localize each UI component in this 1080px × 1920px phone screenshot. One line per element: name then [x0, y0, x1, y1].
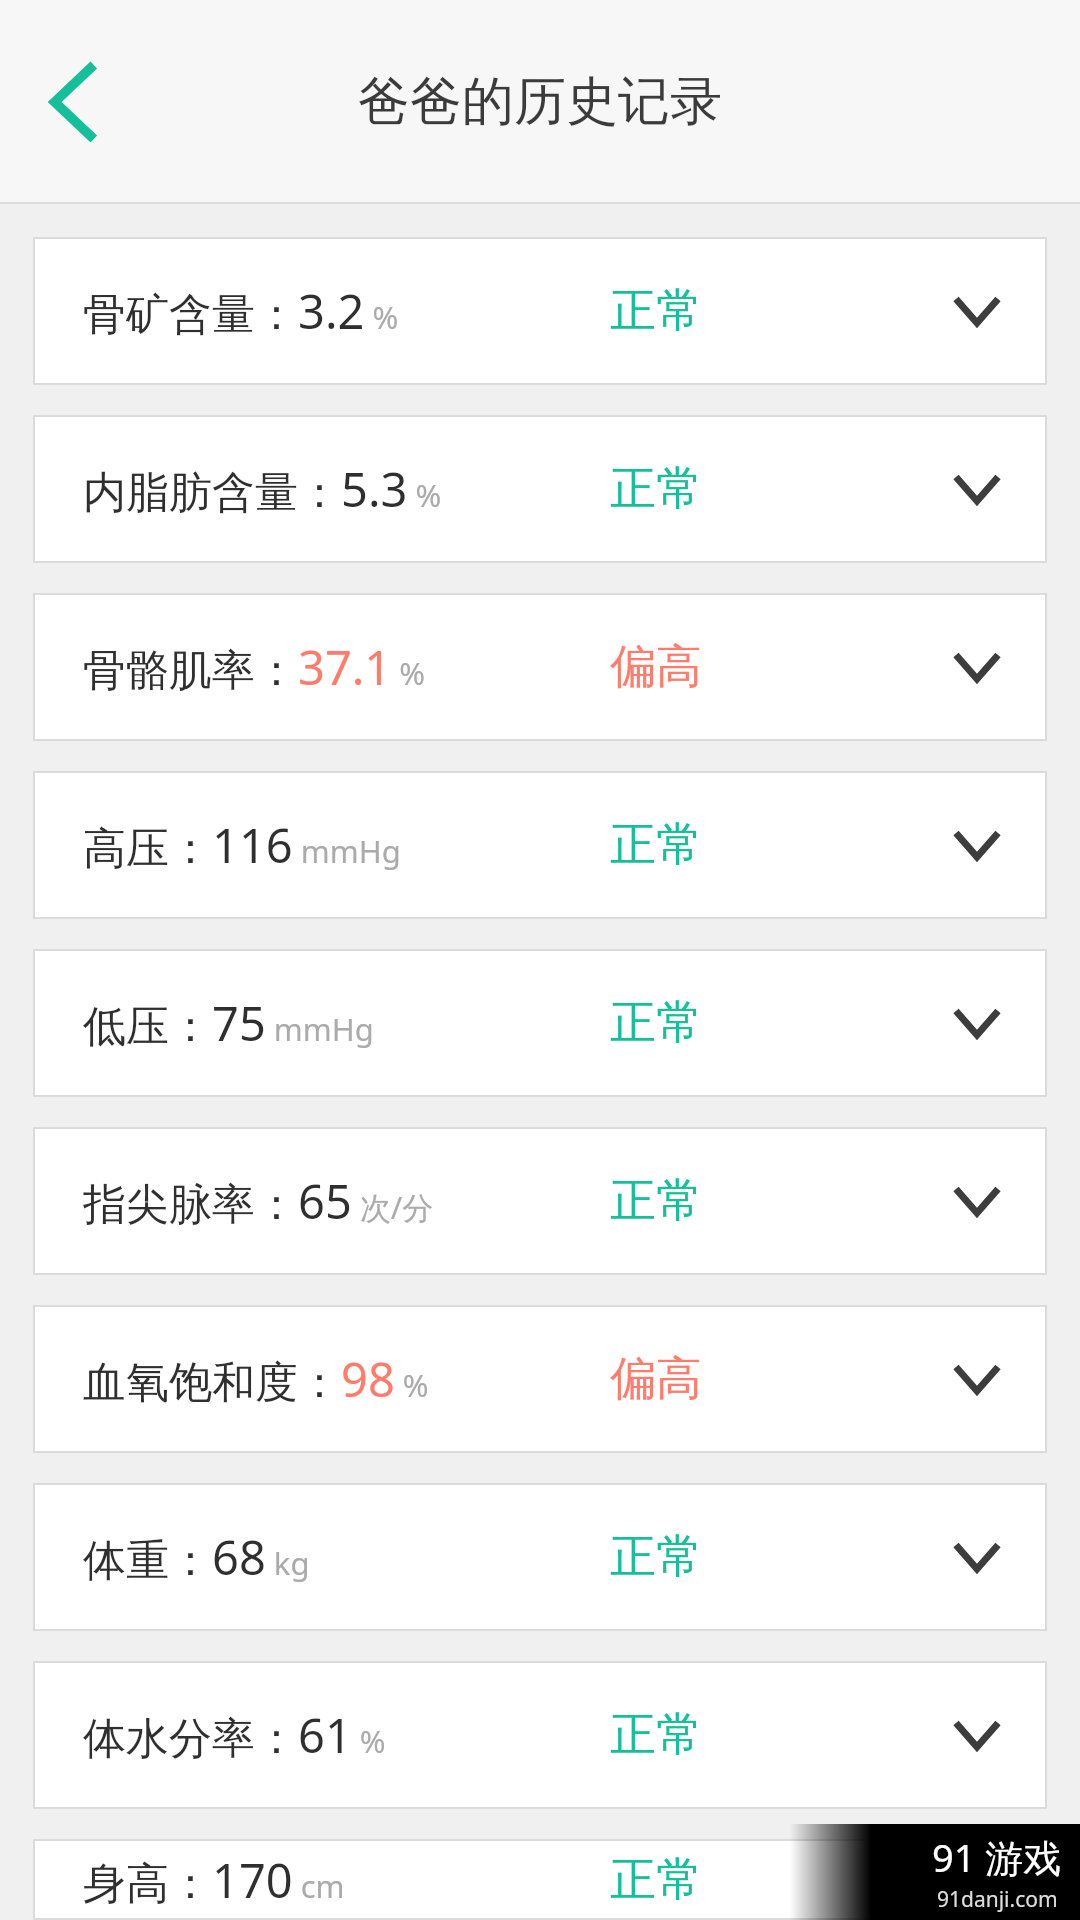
- button[interactable]: Expand: [927, 617, 1027, 717]
- staticText: 指尖脉率：65 次/分: [83, 1169, 434, 1233]
- button[interactable]: 体重：68 kg: [33, 1483, 1047, 1631]
- staticText: 偏高: [610, 638, 702, 696]
- staticText: 骨骼肌率：37.1 %: [83, 635, 426, 699]
- button[interactable]: Expand: [927, 795, 1027, 895]
- staticText: 正常: [610, 460, 702, 518]
- staticText: 体水分率：61 %: [83, 1703, 386, 1767]
- button[interactable]: Back: [18, 46, 130, 158]
- button[interactable]: 指尖脉率：65 次/分: [33, 1127, 1047, 1275]
- staticText: 爸爸的历史记录: [358, 69, 722, 135]
- staticText: 体重：68 kg: [83, 1525, 310, 1589]
- staticText: 91danji.com: [937, 1885, 1058, 1914]
- button[interactable]: Expand: [927, 1685, 1027, 1785]
- button[interactable]: Expand: [927, 1329, 1027, 1429]
- button[interactable]: 骨骼肌率：37.1 %: [33, 593, 1047, 741]
- staticText: 91 游戏: [932, 1831, 1062, 1883]
- staticText: 正常: [610, 816, 702, 874]
- staticText: 正常: [610, 1851, 702, 1909]
- button[interactable]: 身高：170 cm: [33, 1839, 1047, 1920]
- button[interactable]: 骨矿含量：3.2 %: [33, 237, 1047, 385]
- button[interactable]: Expand: [927, 1151, 1027, 1251]
- staticText: 正常: [610, 1172, 702, 1230]
- staticText: 正常: [610, 1706, 702, 1764]
- staticText: 骨矿含量：3.2 %: [83, 279, 399, 343]
- button[interactable]: 血氧饱和度：98 %: [33, 1305, 1047, 1453]
- button[interactable]: 内脂肪含量：5.3 %: [33, 415, 1047, 563]
- button[interactable]: Expand: [927, 261, 1027, 361]
- staticText: 正常: [610, 994, 702, 1052]
- staticText: 血氧饱和度：98 %: [83, 1347, 429, 1411]
- staticText: 正常: [610, 282, 702, 340]
- button[interactable]: 体水分率：61 %: [33, 1661, 1047, 1809]
- staticText: 偏高: [610, 1350, 702, 1408]
- button[interactable]: Expand: [927, 1839, 1027, 1920]
- staticText: 低压：75 mmHg: [83, 991, 374, 1055]
- staticText: 高压：116 mmHg: [83, 813, 401, 877]
- button[interactable]: Expand: [927, 439, 1027, 539]
- button[interactable]: Expand: [927, 1507, 1027, 1607]
- staticText: 正常: [610, 1528, 702, 1586]
- button[interactable]: Expand: [927, 973, 1027, 1073]
- staticText: 身高：170 cm: [83, 1848, 345, 1912]
- staticText: 内脂肪含量：5.3 %: [83, 457, 442, 521]
- button[interactable]: 高压：116 mmHg: [33, 771, 1047, 919]
- button[interactable]: 低压：75 mmHg: [33, 949, 1047, 1097]
